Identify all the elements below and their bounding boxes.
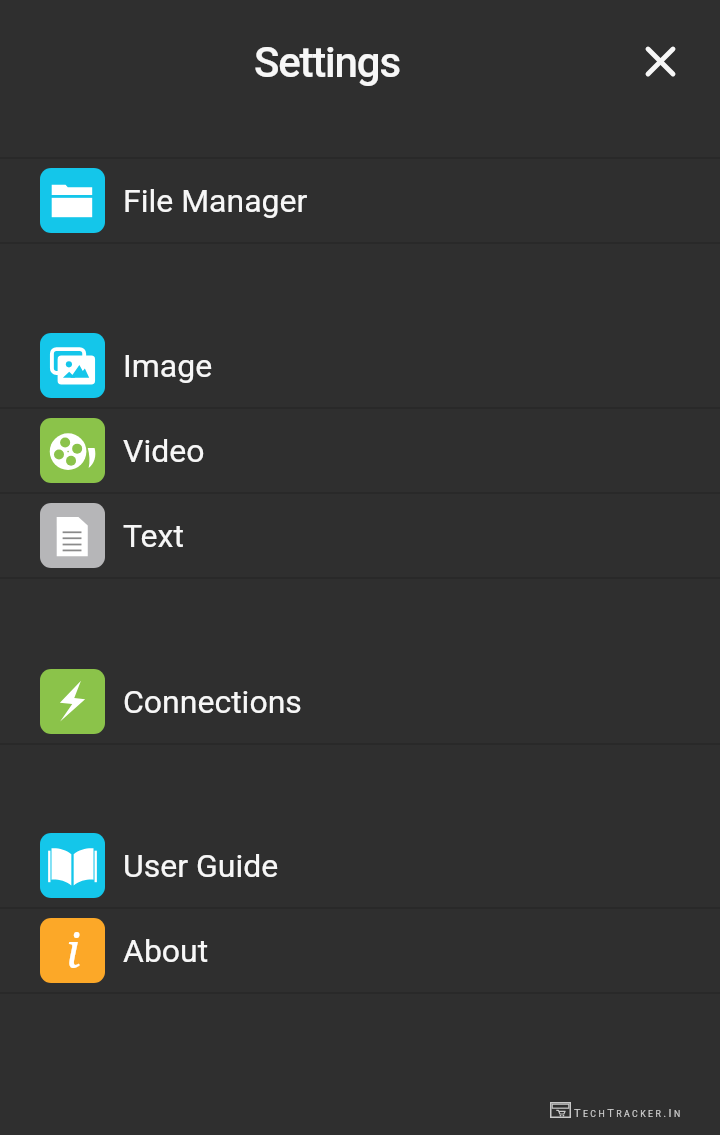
button[interactable]: Connections [0,660,720,743]
staticText: About [123,932,209,970]
button[interactable]: i [0,909,720,992]
staticText: Settings [254,38,400,87]
staticText: Video [123,432,205,470]
staticText: Connections [123,683,302,721]
button[interactable]: User Guide [0,824,720,907]
staticText: Text [123,517,184,555]
staticText: Image [123,347,213,385]
staticText: i [66,918,81,982]
button[interactable]: File Manager [0,159,720,242]
staticText: User Guide [123,847,279,885]
staticText: File Manager [123,182,308,220]
staticText: TECHTRACKER.IN [574,1107,683,1120]
button[interactable]: Image [0,324,720,407]
button[interactable]: Video [0,409,720,492]
button[interactable]: Close [635,36,685,86]
button[interactable]: Text [0,494,720,577]
